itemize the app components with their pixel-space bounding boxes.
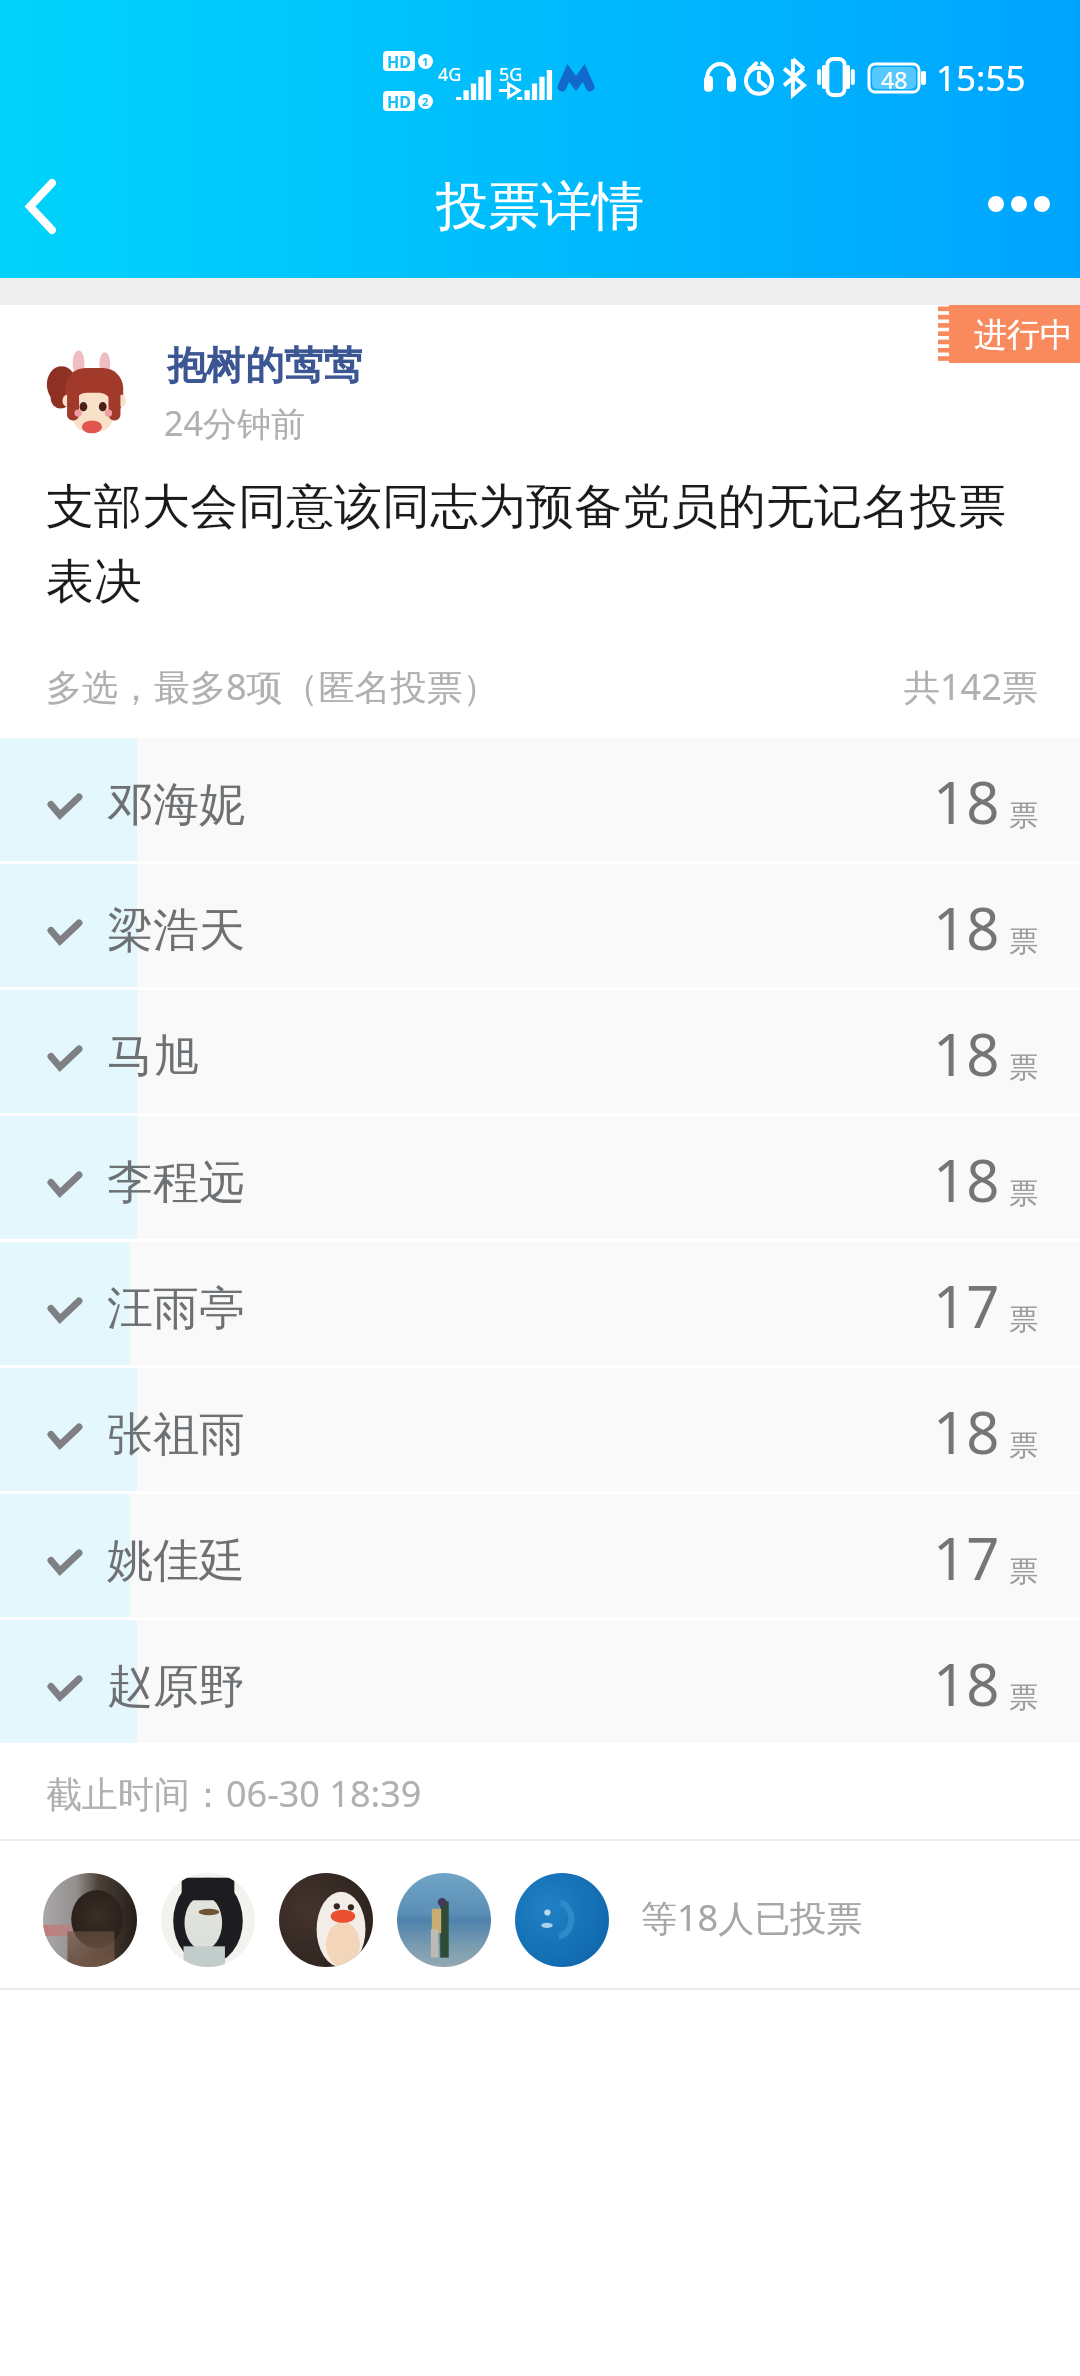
staticText: 5G [499,62,523,87]
staticText: 18 [933,1140,1000,1219]
staticText: 票 [1009,1175,1038,1212]
staticText: 18 [933,1014,1000,1093]
staticText: 18 [933,888,1000,967]
staticText: 2 [422,94,429,109]
staticText: 等18人已投票 [641,1893,863,1942]
staticText: 李程远 [107,1154,245,1212]
button[interactable]: 进行中 [938,305,1080,363]
button[interactable]: 李程远 [0,1116,1080,1239]
staticText: HD [387,51,411,71]
staticText: 邓海妮 [107,776,245,834]
button[interactable]: Back [0,140,112,278]
staticText: 张祖雨 [107,1406,245,1464]
button[interactable]: 梁浩天 [0,864,1080,987]
button[interactable]: 汪雨亭 [0,1242,1080,1365]
staticText: 17 [933,1518,1000,1597]
button[interactable]: Voter avatar [279,1873,373,1967]
staticText: 共142票 [904,662,1038,711]
staticText: 截止时间：06-30 18:39 [46,1769,422,1818]
staticText: 18 [933,1392,1000,1471]
button[interactable]: 张祖雨 [0,1368,1080,1491]
staticText: 票 [1009,797,1038,834]
staticText: 4G [438,62,462,87]
staticText: 15:55 [936,54,1026,102]
button[interactable]: Voter avatar [161,1873,255,1967]
button[interactable]: Voter avatar [43,1873,137,1967]
staticText: 梁浩天 [107,902,245,960]
button[interactable]: 邓海妮 [0,738,1080,861]
staticText: 18 [933,762,1000,841]
staticText: HD [387,91,411,111]
staticText: 马旭 [107,1028,199,1086]
staticText: 24分钟前 [164,400,305,446]
staticText: 17 [933,1266,1000,1345]
button[interactable]: More options [948,140,1080,278]
staticText: 赵原野 [107,1658,245,1716]
staticText: 票 [1009,1679,1038,1716]
staticText: 票 [1009,1049,1038,1086]
staticText: 汪雨亭 [107,1280,245,1338]
staticText: 票 [1009,1427,1038,1464]
staticText: 18 [933,1644,1000,1723]
staticText: 投票详情 [436,174,644,240]
button[interactable]: 赵原野 [0,1620,1080,1743]
button[interactable]: 马旭 [0,990,1080,1113]
staticText: 48 [881,64,908,92]
button[interactable]: Voter avatar [515,1873,609,1967]
staticText: 姚佳廷 [107,1532,245,1590]
staticText: 支部大会同意该同志为预备党员的无记名投票表决 [46,477,1036,612]
staticText: 抱树的莺莺 [167,341,362,390]
staticText: 票 [1009,1301,1038,1338]
staticText: 票 [1009,923,1038,960]
staticText: 票 [1009,1553,1038,1590]
staticText: 多选，最多8项（匿名投票） [46,662,499,711]
button[interactable]: Voter avatar [397,1873,491,1967]
staticText: 进行中 [974,314,1073,356]
button[interactable]: 姚佳廷 [0,1494,1080,1617]
staticText: 1 [422,54,429,69]
button[interactable]: 抱树的莺莺 [30,333,430,453]
